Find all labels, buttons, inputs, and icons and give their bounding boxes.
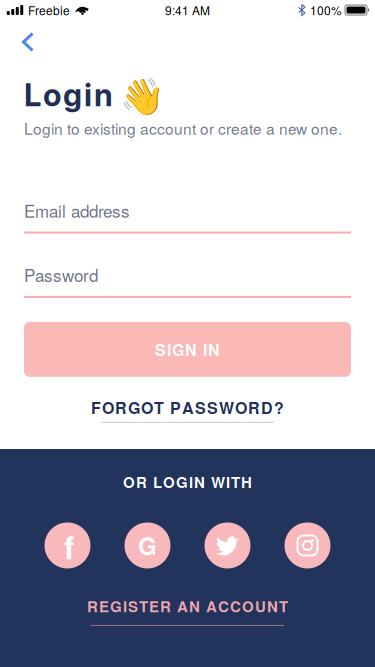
button[interactable] bbox=[284, 522, 330, 568]
button[interactable]: G bbox=[124, 522, 170, 568]
staticText: f bbox=[64, 524, 74, 569]
button[interactable]: f bbox=[44, 522, 90, 568]
staticText: Password bbox=[24, 262, 98, 287]
staticText: 9:41 AM bbox=[165, 1, 210, 19]
staticText: F O R G O T P A S S W O R D ? bbox=[91, 396, 284, 419]
staticText: Login to existing account or create a ne… bbox=[24, 117, 342, 139]
staticText: 100% bbox=[310, 1, 342, 19]
staticText: L o g i n bbox=[24, 76, 113, 114]
staticText: S I G N I N bbox=[155, 338, 220, 361]
staticText: Freebie bbox=[28, 1, 70, 19]
button[interactable]: Password bbox=[0, 262, 375, 298]
button[interactable]: S I G N I N bbox=[24, 322, 351, 377]
staticText: R E G I S T E R A N A C C O U N T bbox=[87, 595, 288, 617]
staticText: G bbox=[138, 528, 157, 563]
button[interactable]: Email address bbox=[0, 198, 375, 233]
button[interactable]: R E G I S T E R A N A C C O U N T bbox=[87, 595, 288, 626]
button[interactable] bbox=[204, 522, 250, 568]
button[interactable] bbox=[0, 32, 46, 52]
staticText: Email address bbox=[24, 198, 130, 222]
staticText: O R L O G I N W I T H bbox=[123, 471, 252, 492]
button[interactable]: F O R G O T P A S S W O R D ? bbox=[0, 396, 375, 423]
staticText: 👋 bbox=[120, 76, 165, 117]
